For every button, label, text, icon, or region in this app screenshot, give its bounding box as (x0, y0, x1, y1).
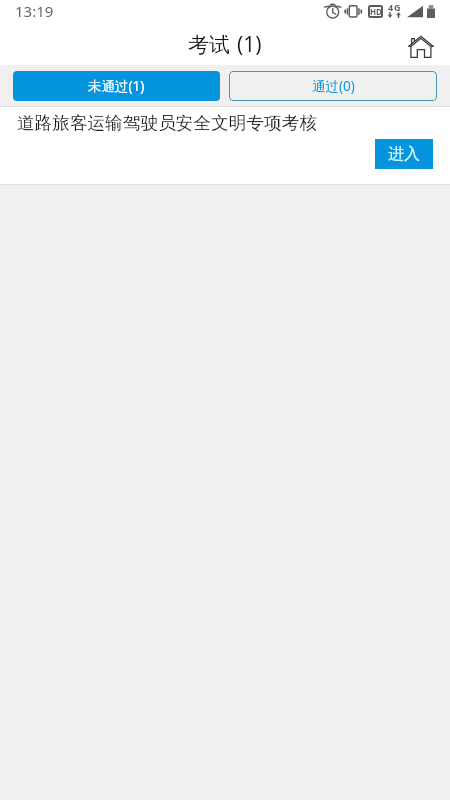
staticText: 4G (388, 1, 402, 13)
staticText: (1) (237, 30, 262, 59)
staticText: 通过(0) (312, 77, 355, 95)
staticText: 考试 (188, 32, 230, 58)
button[interactable]: 通过(0) (229, 71, 437, 101)
staticText: HD (370, 6, 382, 17)
button[interactable]: 未通过(1) (13, 71, 220, 101)
button[interactable]: Home (403, 30, 438, 63)
button[interactable]: 进入 (375, 139, 433, 169)
staticText: 进入 (388, 144, 420, 164)
staticText: 未通过(1) (88, 77, 145, 95)
staticText: 道路旅客运输驾驶员安全文明专项考核 (17, 112, 318, 134)
staticText: 13:19 (15, 1, 54, 21)
